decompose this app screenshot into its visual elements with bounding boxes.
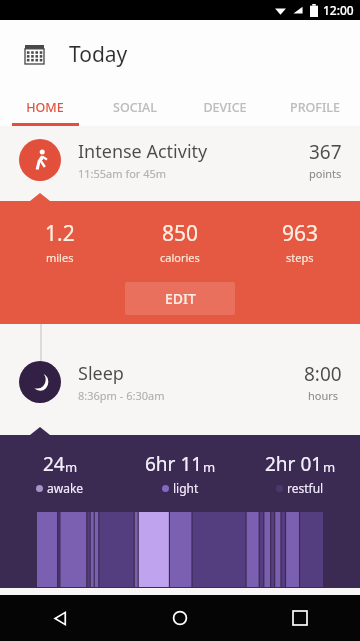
staticText: light: [173, 480, 199, 496]
staticText: Sleep: [78, 361, 124, 386]
staticText: DEVICE: [203, 99, 247, 116]
staticText: restful: [287, 480, 324, 496]
staticText: awake: [47, 480, 84, 496]
staticText: 367: [309, 139, 342, 165]
button[interactable]: Back: [0, 595, 120, 641]
staticText: 24: [43, 451, 65, 477]
button[interactable]: DEVICE: [180, 88, 270, 126]
staticText: Intense Activity: [78, 139, 208, 164]
staticText: 8:36pm - 6:30am: [78, 388, 165, 403]
button[interactable]: Calendar: [19, 39, 49, 69]
button[interactable]: SOCIAL: [90, 88, 180, 126]
staticText: points: [309, 166, 342, 181]
staticText: EDIT: [165, 289, 196, 308]
button[interactable]: Home: [120, 595, 240, 641]
staticText: PROFILE: [290, 99, 340, 116]
button[interactable]: Intense Activity: [0, 126, 360, 193]
staticText: m: [65, 458, 78, 476]
staticText: 2hr 01: [265, 451, 323, 477]
staticText: 11:55am for 45m: [78, 166, 167, 181]
button[interactable]: HOME: [0, 88, 90, 126]
button[interactable]: PROFILE: [270, 88, 360, 126]
staticText: 963: [282, 219, 319, 248]
button[interactable]: Recent apps: [240, 595, 360, 641]
staticText: steps: [286, 250, 314, 265]
staticText: 850: [162, 219, 199, 248]
staticText: calories: [160, 250, 200, 265]
button[interactable]: Sleep: [0, 324, 360, 427]
staticText: m: [203, 458, 216, 476]
staticText: SOCIAL: [113, 99, 157, 116]
staticText: HOME: [26, 99, 64, 116]
staticText: 6hr 11: [145, 451, 203, 477]
staticText: Today: [69, 40, 128, 69]
staticText: miles: [46, 250, 74, 265]
staticText: 12:00: [323, 2, 354, 18]
staticText: m: [323, 458, 336, 476]
button[interactable]: EDIT: [125, 282, 235, 315]
staticText: hours: [308, 388, 339, 403]
staticText: 8:00: [304, 361, 342, 387]
staticText: 1.2: [45, 219, 75, 248]
